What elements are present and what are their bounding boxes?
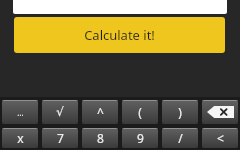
button[interactable]: … (2, 100, 38, 124)
button[interactable]: 8 (82, 128, 118, 148)
button[interactable]: Backspace (202, 100, 238, 124)
button[interactable]: / (162, 128, 198, 148)
button[interactable]: x (2, 128, 38, 148)
button[interactable]: < (202, 128, 238, 148)
staticText: x (17, 130, 24, 146)
staticText: … (17, 107, 24, 118)
staticText: 9 (137, 130, 144, 146)
button[interactable]: √ (42, 100, 78, 124)
staticText: ) (178, 104, 182, 120)
staticText: Calculate it! (84, 26, 155, 44)
button[interactable]: 7 (42, 128, 78, 148)
staticText: 8 (97, 130, 104, 146)
button[interactable] (13, 0, 227, 14)
staticText: ( (138, 104, 142, 120)
staticText: < (217, 130, 224, 146)
button[interactable]: ^ (82, 100, 118, 124)
staticText: √ (56, 105, 64, 119)
button[interactable]: 9 (122, 128, 158, 148)
staticText: 7 (57, 130, 64, 146)
button[interactable]: ( (122, 100, 158, 124)
button[interactable]: Calculate it! (14, 17, 225, 53)
button[interactable]: ) (162, 100, 198, 124)
staticText: ^ (97, 104, 104, 120)
staticText: / (178, 130, 183, 146)
